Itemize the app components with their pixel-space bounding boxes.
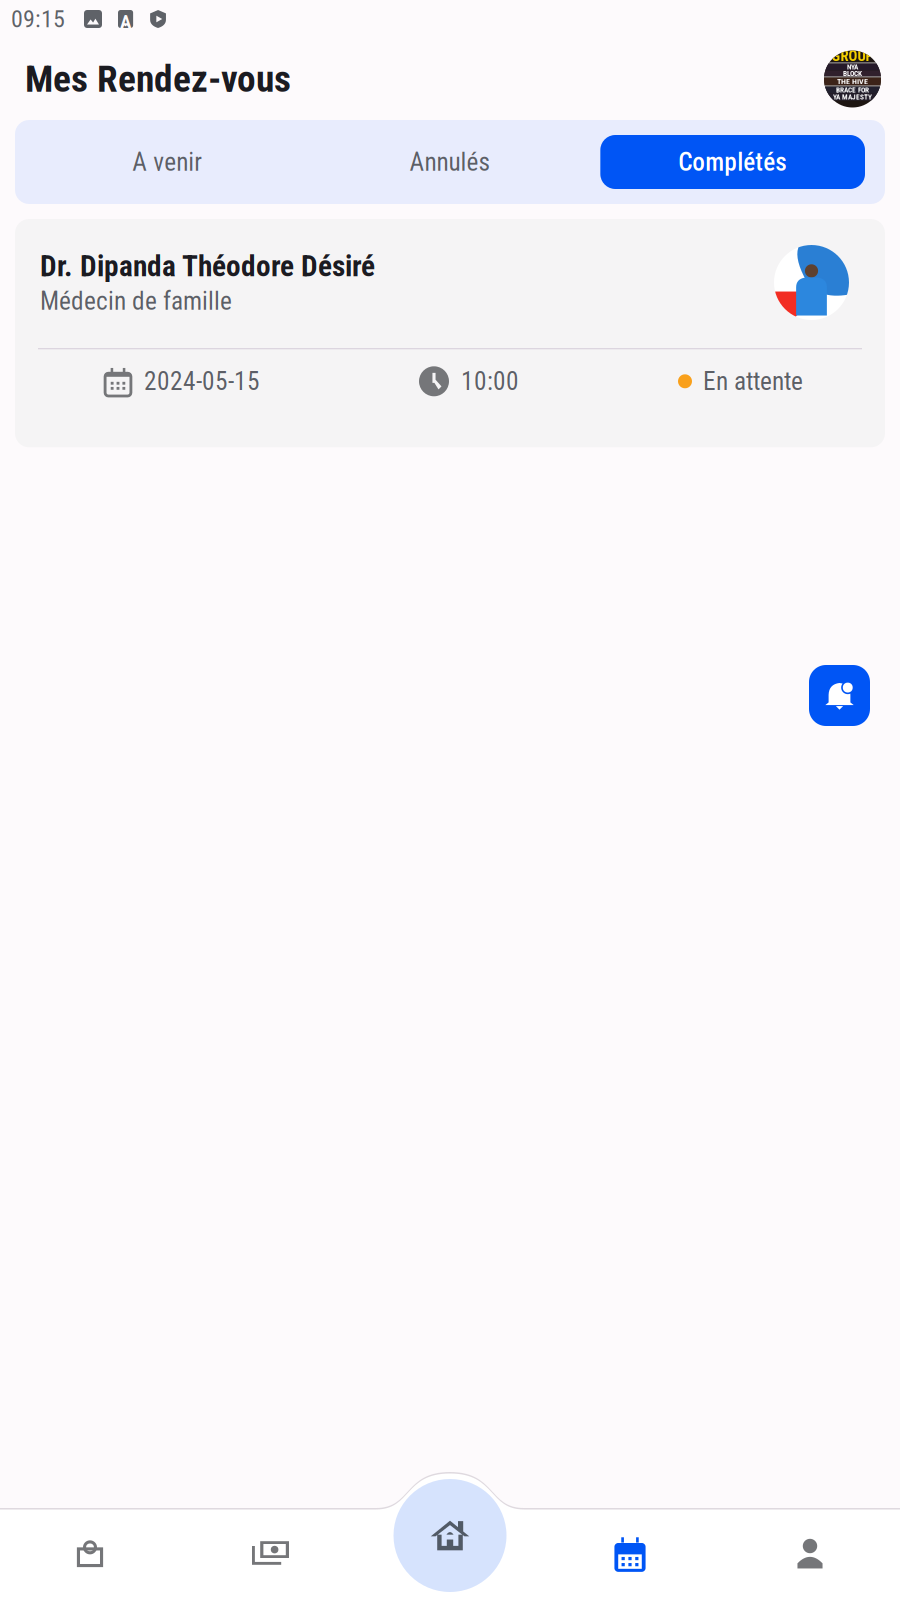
staticText: NYA	[847, 63, 858, 71]
button[interactable]: Notifications	[809, 665, 870, 726]
button[interactable]: Payments	[180, 1508, 360, 1600]
button[interactable]: Shop	[0, 1508, 180, 1600]
button[interactable]: Annulés	[309, 135, 591, 189]
staticText: Dr. Dipanda Théodore Désiré	[40, 249, 375, 283]
button[interactable]: Complétés	[591, 135, 874, 189]
staticText: BRACE FOR	[836, 86, 869, 94]
staticText: A venir	[132, 147, 202, 177]
staticText: 10:00	[461, 366, 519, 396]
staticText: A	[120, 10, 131, 33]
staticText: En attente	[703, 366, 803, 396]
button[interactable]: A venir	[26, 135, 309, 189]
staticText: Complétés	[678, 147, 787, 177]
button[interactable]: Home	[360, 1508, 540, 1600]
staticText: Médecin de famille	[40, 286, 232, 316]
button[interactable]: Profile	[824, 50, 881, 107]
staticText: GROUP	[831, 47, 873, 65]
button[interactable]: Home	[393, 1479, 506, 1592]
staticText: Annulés	[409, 147, 490, 177]
staticText: 09:15	[11, 5, 65, 33]
staticText: Mes Rendez-vous	[25, 57, 291, 101]
staticText: BLOCK	[843, 69, 862, 78]
staticText: YA MAJESTY	[833, 93, 872, 101]
staticText: THE HIVE	[837, 77, 868, 86]
button[interactable]: Profile	[720, 1508, 900, 1600]
staticText: 2024-05-15	[144, 366, 260, 396]
button[interactable]: Appointments	[540, 1508, 720, 1600]
